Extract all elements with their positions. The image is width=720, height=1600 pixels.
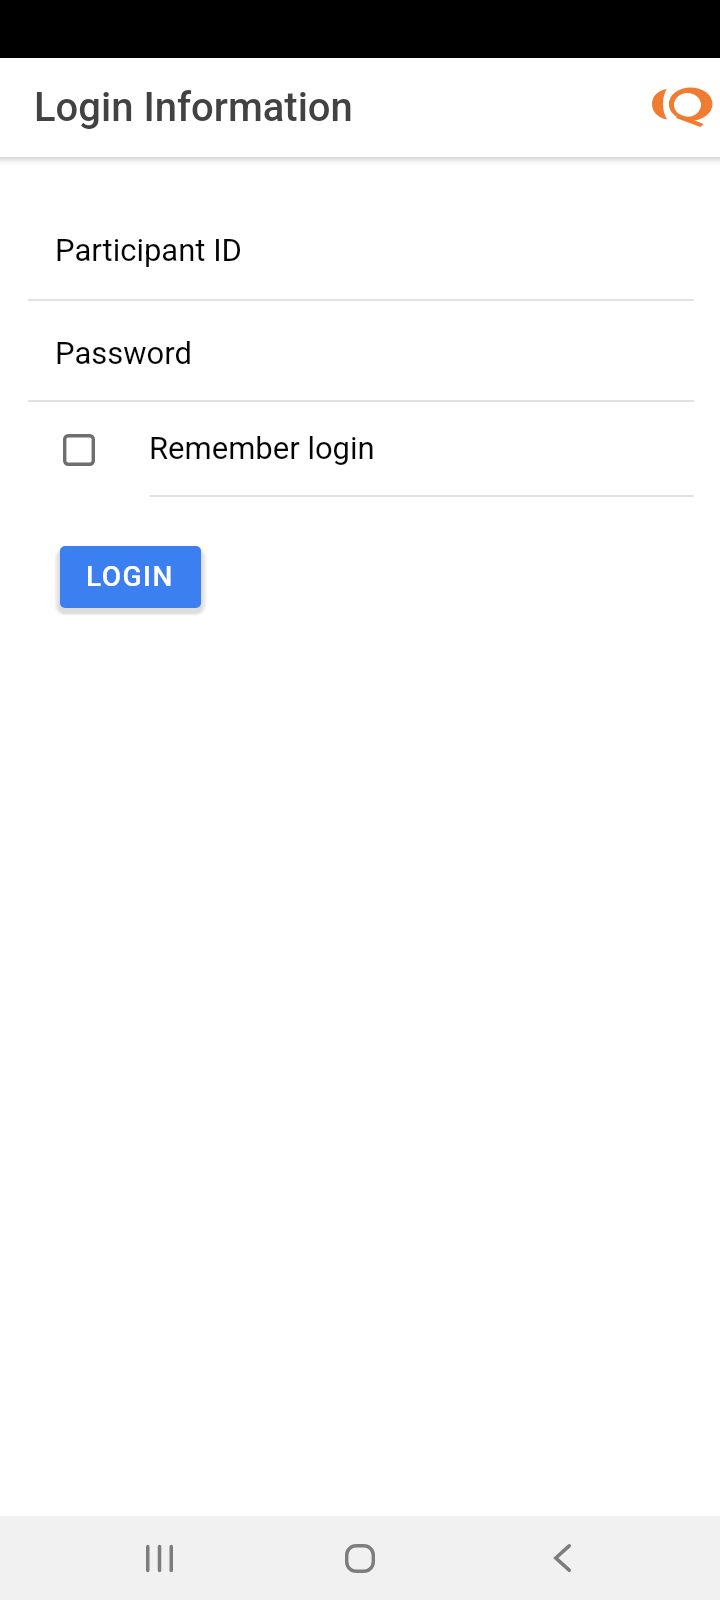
button[interactable]: Participant ID: [0, 214, 720, 286]
staticText: Participant ID: [55, 232, 242, 268]
button[interactable]: Home: [329, 1527, 391, 1589]
button[interactable]: Remember login: [0, 412, 720, 483]
button[interactable]: LOGIN: [60, 546, 201, 608]
button[interactable]: Password: [0, 317, 720, 389]
staticText: LOGIN: [86, 560, 174, 593]
staticText: Password: [55, 335, 192, 371]
button[interactable]: Recent apps: [128, 1527, 190, 1589]
staticText: Login Information: [34, 84, 353, 131]
button[interactable]: Back: [530, 1527, 592, 1589]
button[interactable]: App logo: [640, 72, 720, 144]
staticText: Remember login: [149, 430, 375, 466]
